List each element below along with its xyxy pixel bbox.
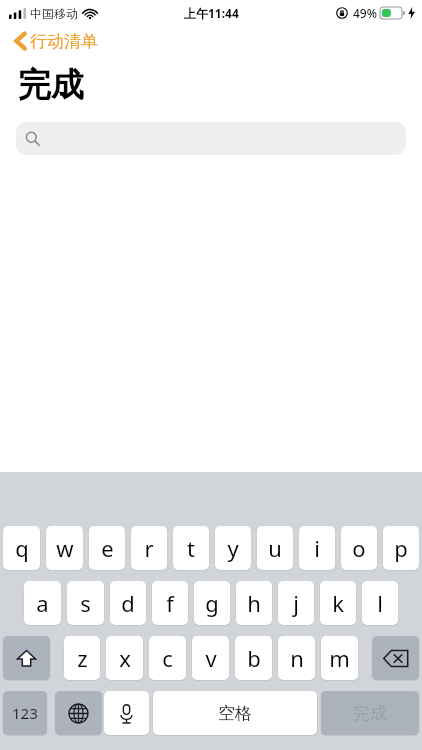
- staticText: o: [352, 533, 366, 563]
- button[interactable]: Backspace: [372, 636, 419, 680]
- button[interactable]: k: [320, 581, 356, 625]
- button[interactable]: x: [106, 636, 143, 680]
- staticText: 上午11:44: [184, 5, 239, 21]
- button[interactable]: z: [64, 636, 100, 680]
- staticText: y: [227, 533, 239, 563]
- staticText: r: [144, 533, 154, 563]
- button[interactable]: [16, 122, 406, 155]
- staticText: 空格: [218, 703, 252, 724]
- staticText: j: [293, 588, 299, 618]
- button[interactable]: b: [235, 636, 272, 680]
- staticText: l: [377, 588, 383, 618]
- staticText: 行动清单: [30, 31, 98, 52]
- staticText: 123: [12, 703, 38, 723]
- staticText: n: [290, 643, 304, 673]
- button[interactable]: r: [131, 526, 167, 570]
- staticText: h: [247, 588, 261, 618]
- button[interactable]: j: [278, 581, 314, 625]
- button[interactable]: n: [278, 636, 315, 680]
- button[interactable]: m: [321, 636, 358, 680]
- staticText: 49%: [353, 5, 377, 21]
- staticText: b: [247, 643, 261, 673]
- staticText: c: [162, 643, 173, 673]
- button[interactable]: g: [194, 581, 230, 625]
- staticText: v: [205, 643, 217, 673]
- button[interactable]: a: [24, 581, 61, 625]
- staticText: i: [314, 533, 320, 563]
- button[interactable]: q: [3, 526, 40, 570]
- staticText: q: [15, 533, 29, 563]
- staticText: t: [187, 533, 195, 563]
- staticText: z: [77, 643, 88, 673]
- button[interactable]: f: [152, 581, 188, 625]
- staticText: d: [121, 588, 135, 618]
- staticText: x: [119, 643, 131, 673]
- staticText: k: [332, 588, 344, 618]
- button[interactable]: y: [215, 526, 251, 570]
- button[interactable]: s: [67, 581, 104, 625]
- staticText: p: [394, 533, 408, 563]
- button[interactable]: u: [257, 526, 293, 570]
- staticText: e: [101, 533, 114, 563]
- button[interactable]: o: [341, 526, 377, 570]
- button[interactable]: i: [299, 526, 335, 570]
- button[interactable]: h: [236, 581, 272, 625]
- button[interactable]: Switch keyboard language: [55, 691, 102, 735]
- staticText: a: [36, 588, 49, 618]
- button[interactable]: d: [110, 581, 146, 625]
- button[interactable]: p: [383, 526, 419, 570]
- button[interactable]: Shift: [3, 636, 50, 680]
- button[interactable]: 完成: [321, 691, 419, 735]
- staticText: f: [166, 588, 174, 618]
- staticText: u: [268, 533, 282, 563]
- button[interactable]: 空格: [153, 691, 317, 735]
- button[interactable]: Dictation: [104, 691, 149, 735]
- button[interactable]: 123: [3, 691, 47, 735]
- button[interactable]: v: [192, 636, 229, 680]
- staticText: g: [205, 588, 219, 618]
- button[interactable]: e: [89, 526, 125, 570]
- staticText: 中国移动: [30, 6, 78, 21]
- staticText: m: [329, 643, 350, 673]
- button[interactable]: c: [149, 636, 186, 680]
- button[interactable]: w: [46, 526, 83, 570]
- staticText: s: [80, 588, 91, 618]
- staticText: w: [56, 533, 74, 563]
- staticText: 完成: [18, 64, 84, 106]
- button[interactable]: 行动清单: [10, 26, 102, 56]
- staticText: 完成: [353, 703, 387, 724]
- button[interactable]: l: [362, 581, 398, 625]
- button[interactable]: t: [173, 526, 209, 570]
